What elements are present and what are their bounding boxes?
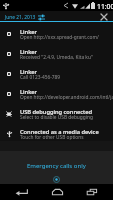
staticText: Linker xyxy=(20,68,37,76)
staticText: Linker xyxy=(20,28,37,36)
button[interactable]: Settings xyxy=(37,12,46,22)
button[interactable]: Linker xyxy=(0,82,113,102)
staticText: Linker xyxy=(20,88,37,96)
staticText: Touch for other USB options xyxy=(20,134,84,141)
staticText: 11:00 xyxy=(97,2,113,11)
button[interactable]: Clear all notifications xyxy=(99,12,109,22)
button[interactable]: Home xyxy=(42,184,72,200)
staticText: Open http://xxx.spread-grant.com/ xyxy=(20,34,99,41)
staticText: Emergency calls only xyxy=(27,162,86,170)
staticText: Received "2.4.9, Umeda, Kita ku" xyxy=(20,54,93,61)
button[interactable]: Connected as a media device xyxy=(0,122,113,141)
staticText: June 21, 2013 xyxy=(5,14,36,21)
button[interactable]: Back xyxy=(6,184,36,200)
staticText: Open http://developer.android.com/intl/j… xyxy=(20,94,113,101)
button[interactable]: Close notification shade xyxy=(52,175,61,184)
staticText: USB debugging connected xyxy=(20,108,92,116)
staticText: Connected as a media device xyxy=(20,128,99,136)
button[interactable]: Linker xyxy=(0,62,113,82)
staticText: Select to disable USB debugging xyxy=(20,114,93,121)
staticText: Call 0123-456-789 xyxy=(20,74,60,81)
staticText: Linker xyxy=(20,48,37,56)
button[interactable]: USB debugging connected xyxy=(0,102,113,122)
button[interactable]: Linker xyxy=(0,22,113,42)
button[interactable]: Linker xyxy=(0,42,113,62)
button[interactable]: Recent apps xyxy=(77,184,107,200)
